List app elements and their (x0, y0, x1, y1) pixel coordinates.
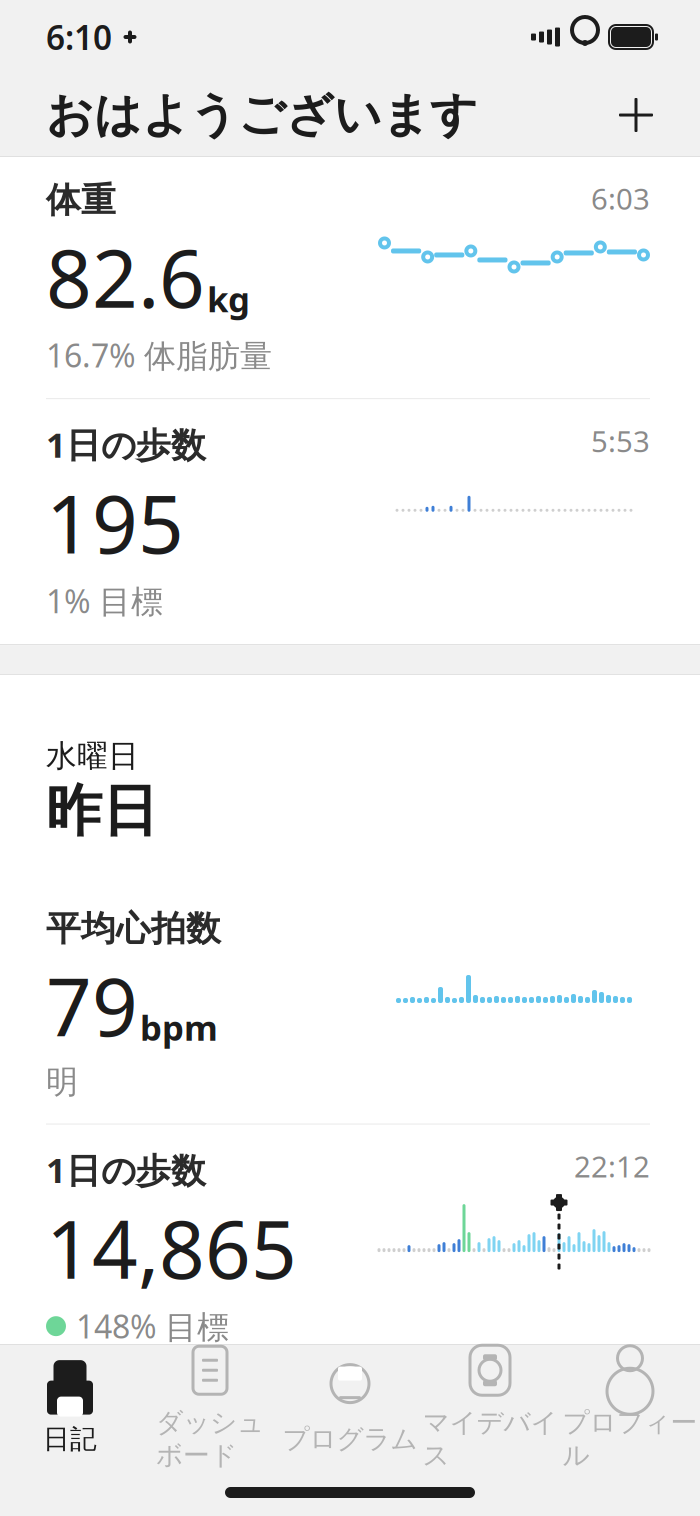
button[interactable]: プロフィール (560, 1355, 700, 1459)
button[interactable]: 日記 (0, 1355, 140, 1459)
staticText: 明 (46, 1062, 78, 1102)
staticText: プロフィール (562, 1406, 697, 1472)
staticText: 日記 (43, 1423, 97, 1455)
staticText: 14,865 (46, 1195, 297, 1301)
button[interactable]: 追加 (608, 87, 664, 143)
staticText: 79 (46, 952, 138, 1058)
staticText: プログラム (282, 1423, 417, 1455)
button[interactable]: 平均心拍数 (0, 885, 700, 1125)
staticText: 82.6 (46, 224, 205, 330)
staticText: 1日の歩数 (46, 1147, 206, 1193)
button[interactable]: プログラム (280, 1355, 420, 1459)
button[interactable]: ダッシュボード (140, 1355, 280, 1459)
staticText: 6:10 (46, 15, 112, 59)
button[interactable]: ランニング (0, 1370, 700, 1516)
staticText: 水曜日 (46, 737, 139, 775)
staticText: おはようございます (46, 86, 478, 144)
staticText: kg (207, 276, 250, 322)
staticText: 16.7% 体脂肪量 (46, 334, 272, 376)
staticText: 6:03 (591, 179, 650, 218)
staticText: ランニング (46, 1392, 221, 1435)
staticText: 148% 目標 (76, 1305, 229, 1347)
staticText: bpm (140, 1004, 218, 1050)
staticText: 6:30 (591, 1384, 650, 1423)
button[interactable]: 1日の歩数 (0, 399, 700, 644)
staticText: 1日の歩数 (46, 421, 206, 467)
staticText: 34 (46, 1437, 138, 1516)
staticText: 昨日 (46, 777, 158, 845)
staticText: 平均心拍数 (46, 907, 221, 950)
staticText: 195 (46, 469, 184, 575)
staticText: 1% 目標 (46, 580, 163, 622)
staticText: 22:12 (574, 1147, 650, 1186)
staticText: 体重 (46, 179, 116, 222)
button[interactable]: マイデバイス (420, 1355, 560, 1459)
button[interactable]: 体重 (0, 157, 700, 399)
staticText: 5:53 (591, 421, 650, 460)
button[interactable]: 1日の歩数 (0, 1125, 700, 1370)
staticText: マイデバイス (422, 1406, 557, 1472)
staticText: ダッシュボード (156, 1406, 264, 1472)
